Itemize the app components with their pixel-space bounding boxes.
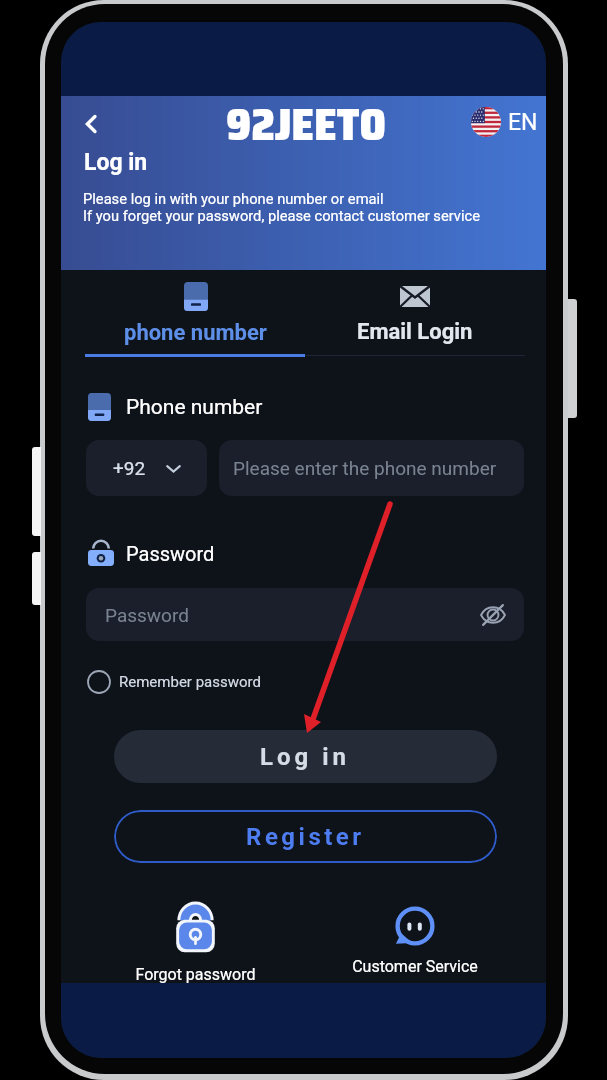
staticText: Log in [260,743,351,771]
button[interactable]: Remember password [87,669,261,695]
staticText: If you forget your password, please cont… [83,207,480,224]
staticText: Log in [84,149,148,176]
button[interactable]: Show password [478,600,508,630]
staticText: +92 [113,457,146,479]
button[interactable]: Back [71,104,111,144]
staticText: Please log in with your phone number or … [83,190,384,207]
staticText: Customer Service [352,957,478,976]
button[interactable]: Language: English [471,107,538,137]
button[interactable]: Customer Service [305,906,525,976]
button[interactable]: +92 [86,440,207,496]
staticText: Phone number [126,395,263,420]
staticText: Remember password [119,673,261,691]
staticText: 92JEETO [226,90,386,159]
staticText: Email Login [357,319,473,345]
button[interactable]: phone number [85,274,305,379]
staticText: Register [246,823,365,851]
button[interactable]: Log in [114,730,497,783]
staticText: Password [105,604,189,626]
button[interactable]: Email Login [305,274,525,379]
button[interactable]: Forgot password [85,906,305,984]
button[interactable]: Register [114,810,497,863]
staticText: phone number [124,320,267,346]
staticText: Password [126,542,215,565]
button[interactable]: Please enter the phone number [219,440,524,496]
button[interactable]: Password [86,588,524,641]
staticText: EN [508,109,538,136]
staticText: Forgot password [135,965,256,984]
staticText: Please enter the phone number [233,457,497,479]
